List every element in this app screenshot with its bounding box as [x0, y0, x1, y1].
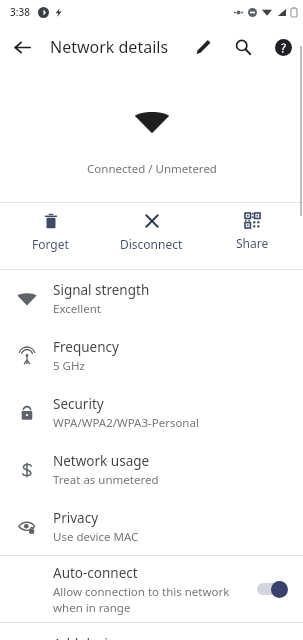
button[interactable]: Edit	[183, 27, 223, 67]
staticText: Signal strength	[53, 281, 150, 299]
button[interactable]: Help	[263, 27, 303, 67]
staticText: Security	[53, 395, 104, 413]
staticText: WPA/WPA2/WPA3-Personal	[53, 415, 199, 431]
button[interactable]: Network usage	[0, 441, 303, 498]
staticText: 3:38	[10, 5, 30, 19]
button[interactable]: Auto-connect	[0, 556, 303, 622]
staticText: Add device	[53, 635, 122, 640]
button[interactable]: Signal strength	[0, 270, 303, 327]
staticText: Frequency	[53, 338, 119, 356]
button[interactable]: Frequency	[0, 327, 303, 384]
button[interactable]: Share	[202, 203, 303, 269]
staticText: Disconnect	[120, 236, 183, 252]
staticText: Network details	[50, 36, 183, 58]
staticText: 5 GHz	[53, 358, 85, 374]
button[interactable]: Add device	[0, 623, 303, 640]
staticText: Excellent	[53, 301, 101, 317]
staticText: Allow connection to this network when in…	[53, 584, 230, 615]
button[interactable]: Security	[0, 384, 303, 441]
button[interactable]: Back	[0, 25, 44, 69]
staticText: Auto-connect	[53, 564, 138, 582]
button[interactable]: Disconnect	[101, 203, 202, 269]
staticText: Use device MAC	[53, 529, 139, 545]
button[interactable]: Privacy	[0, 498, 303, 555]
staticText: Share	[236, 235, 269, 251]
staticText: Network usage	[53, 452, 150, 470]
staticText: Forget	[32, 236, 69, 252]
staticText: Privacy	[53, 509, 99, 527]
staticText: Treat as unmetered	[53, 472, 159, 488]
button[interactable]: Forget	[0, 203, 101, 269]
button[interactable]: Search	[223, 27, 263, 67]
staticText: Connected / Unmetered	[87, 161, 217, 177]
